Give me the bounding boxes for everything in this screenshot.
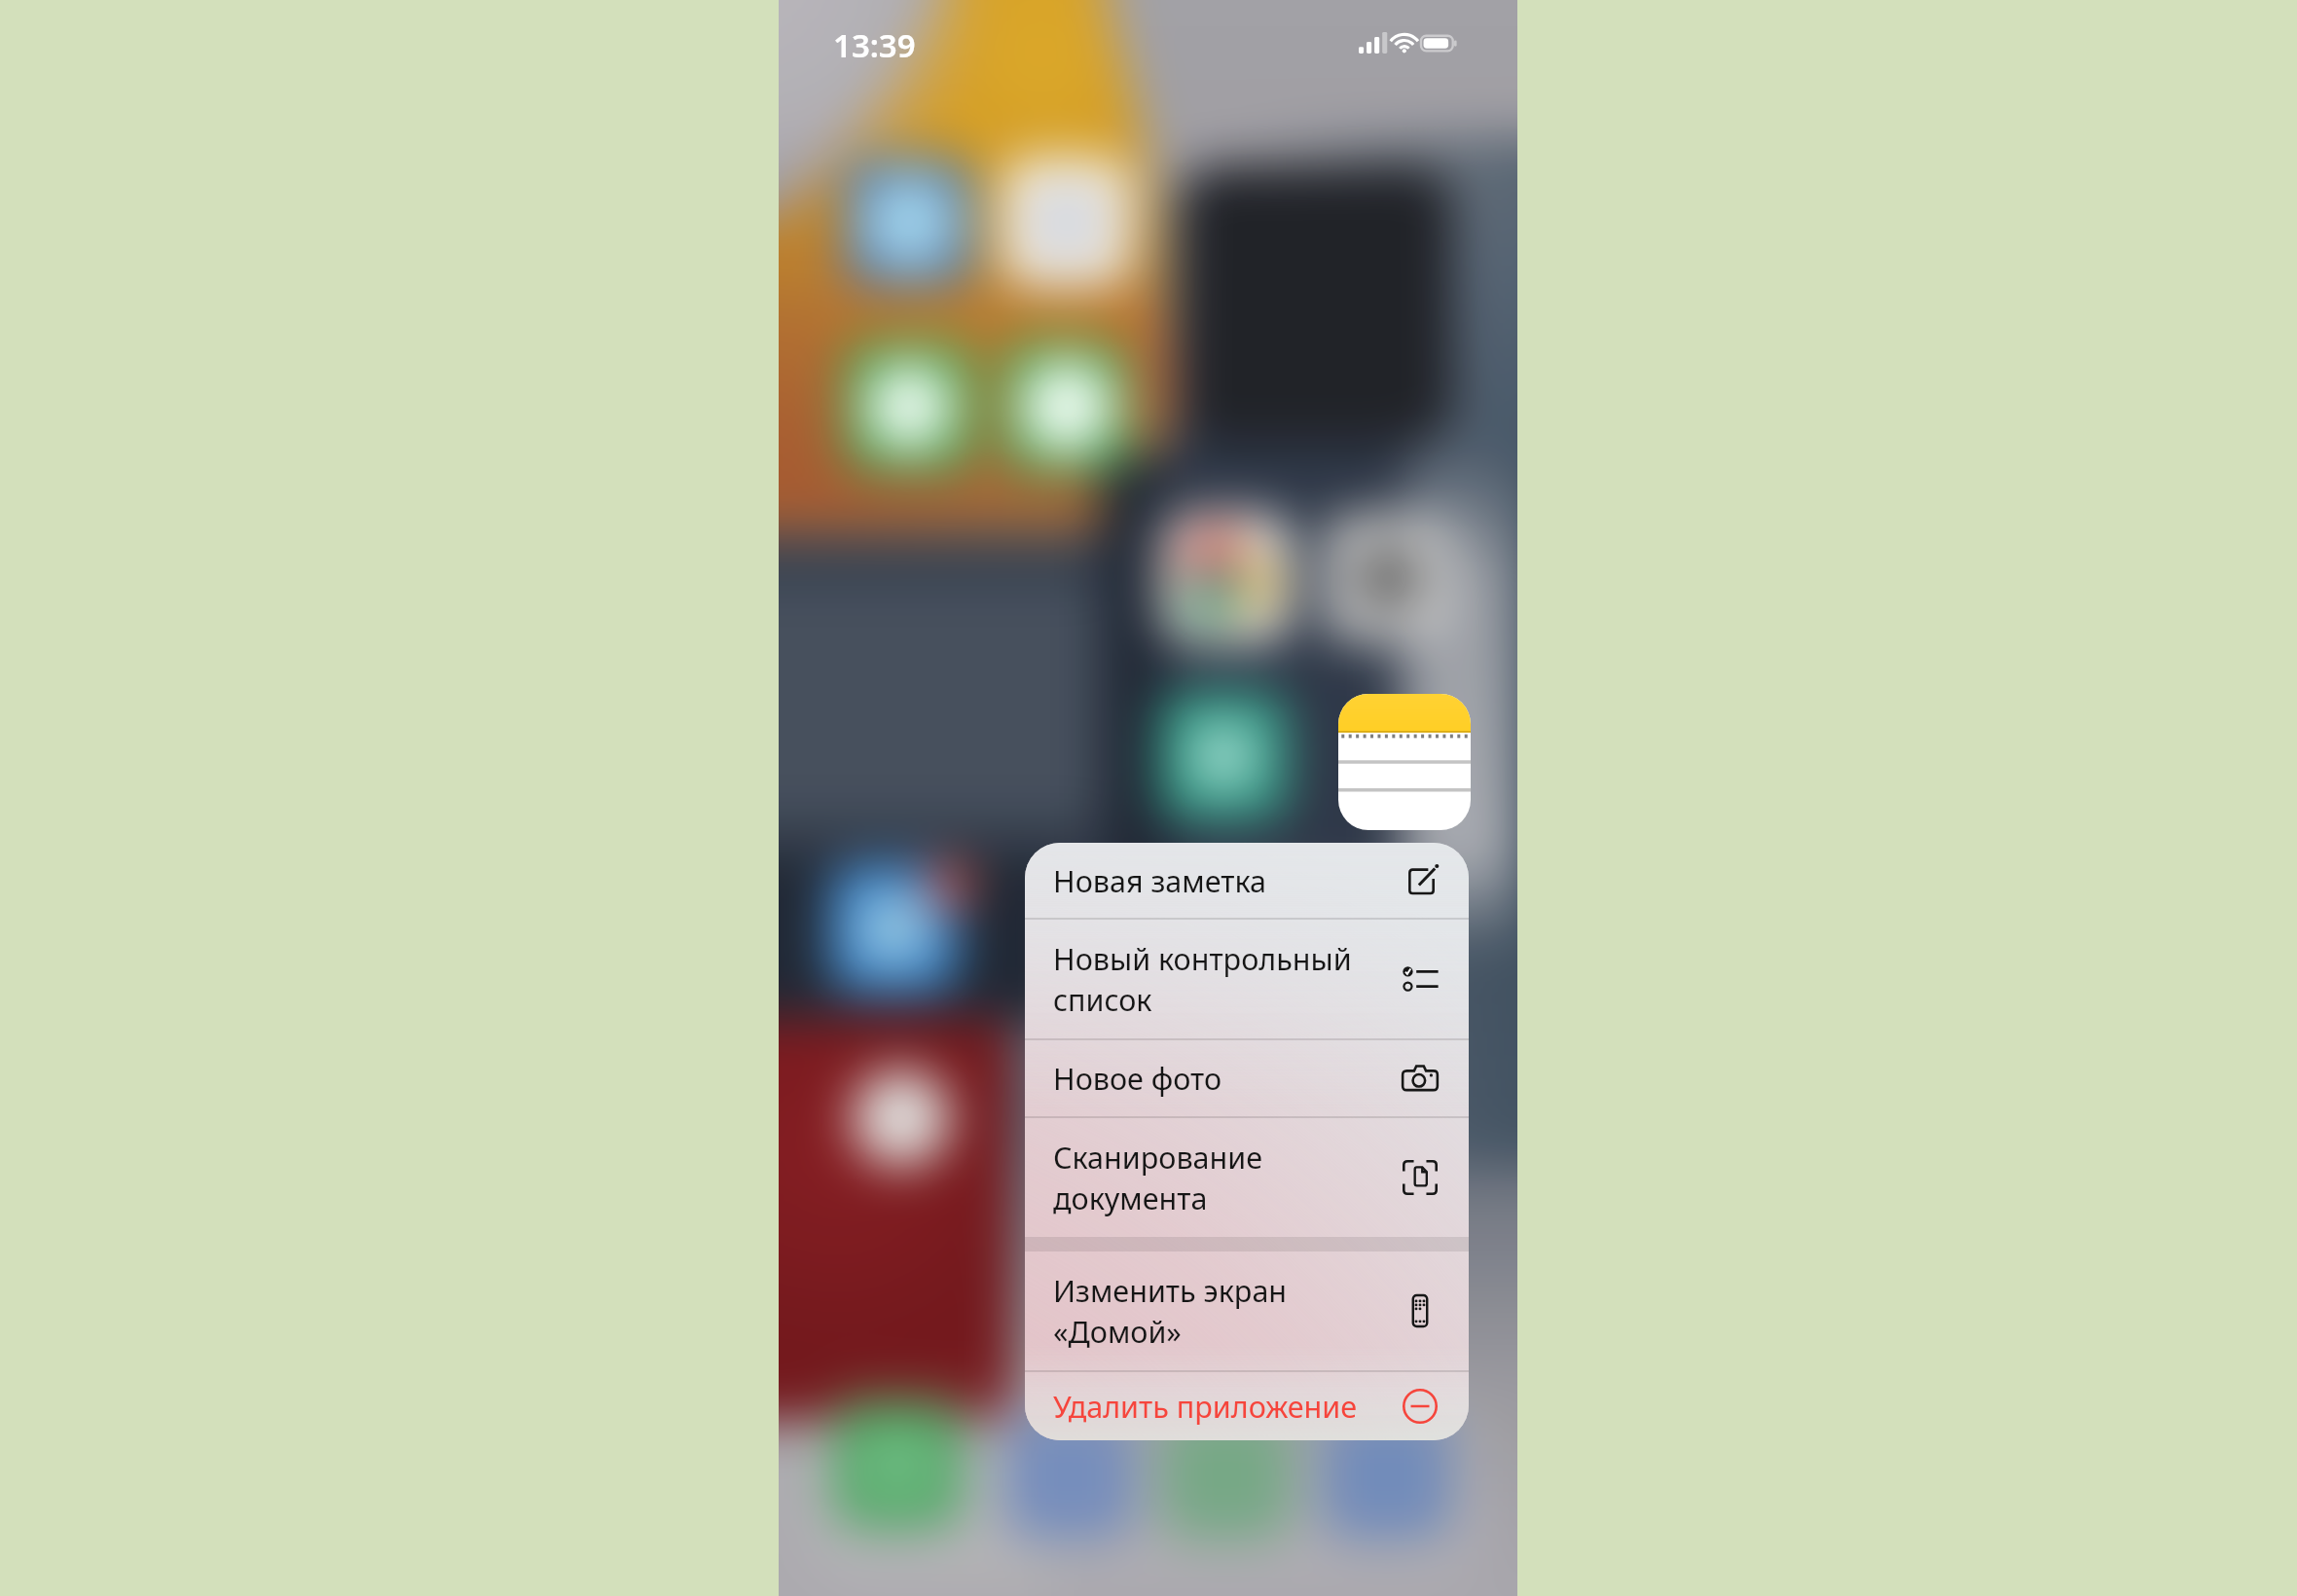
button[interactable]: Новый контрольный bbox=[1025, 920, 1469, 1038]
staticText: Изменить экран bbox=[1053, 1270, 1288, 1311]
staticText: Новая заметка bbox=[1053, 860, 1266, 901]
staticText: документа bbox=[1053, 1178, 1208, 1218]
staticText: Удалить приложение bbox=[1053, 1386, 1357, 1427]
staticText: 13:39 bbox=[833, 23, 916, 67]
other: Заметки bbox=[1338, 694, 1471, 830]
button[interactable]: Новая заметка bbox=[1025, 843, 1469, 918]
staticText: Новый контрольный bbox=[1053, 938, 1352, 979]
staticText: Новое фото bbox=[1053, 1058, 1222, 1099]
button[interactable]: Изменить экран bbox=[1025, 1251, 1469, 1370]
staticText: «Домой» bbox=[1053, 1311, 1182, 1352]
staticText: список bbox=[1053, 979, 1152, 1020]
button[interactable]: Удалить приложение bbox=[1025, 1372, 1469, 1440]
button[interactable]: Сканирование bbox=[1025, 1118, 1469, 1237]
button[interactable]: Новое фото bbox=[1025, 1040, 1469, 1116]
staticText: Сканирование bbox=[1053, 1137, 1263, 1178]
